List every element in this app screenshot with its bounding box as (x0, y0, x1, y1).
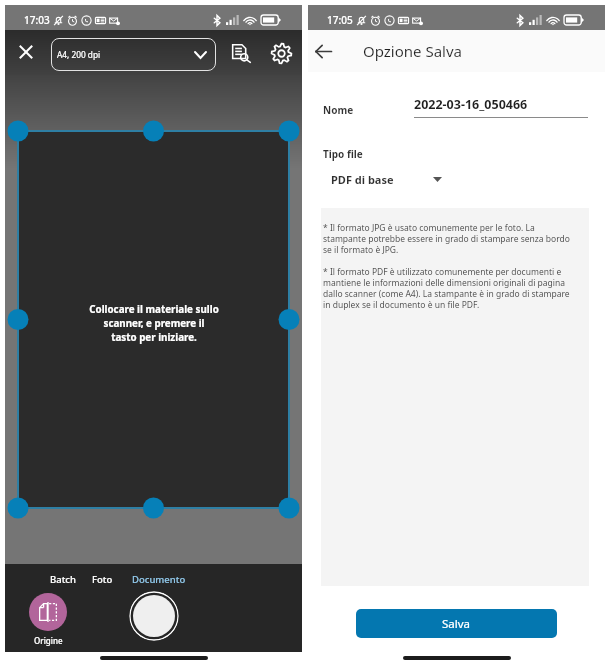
button[interactable]: A4, 200 dpi (51, 38, 216, 71)
staticText: Collocare il materiale sullo scanner, e … (89, 303, 219, 344)
button[interactable]: Shutter (129, 591, 179, 641)
button[interactable]: Close (15, 41, 37, 63)
button[interactable]: Preview (228, 40, 254, 66)
button[interactable]: Batch (46, 570, 80, 588)
button[interactable]: 2022-03-16_050466 (414, 96, 588, 118)
staticText: Tipo file (323, 147, 363, 161)
staticText: A4, 200 dpi (57, 49, 101, 60)
button[interactable]: PDF di base (326, 168, 442, 190)
staticText: PDF di base (331, 172, 394, 187)
staticText: Foto (92, 573, 113, 585)
staticText: 2022-03-16_050466 (414, 96, 528, 113)
staticText: Origine (34, 635, 63, 646)
staticText: Nome (323, 103, 354, 117)
button[interactable]: Back (312, 40, 334, 62)
button[interactable]: Origine (23, 593, 73, 646)
staticText: 17:05 (327, 13, 353, 27)
button[interactable]: Settings (268, 40, 294, 66)
button[interactable]: Salva (356, 609, 557, 638)
staticText: Opzione Salva (363, 41, 462, 61)
button[interactable]: Foto (88, 570, 117, 588)
staticText: * Il formato JPG è usato comunemente per… (323, 222, 570, 255)
staticText: Batch (50, 573, 76, 585)
staticText: * Il formato PDF è utilizzato comunement… (323, 266, 570, 310)
staticText: 17:03 (24, 13, 50, 27)
staticText: Salva (442, 616, 471, 632)
button[interactable]: Documento (128, 570, 190, 588)
staticText: Documento (132, 573, 186, 585)
